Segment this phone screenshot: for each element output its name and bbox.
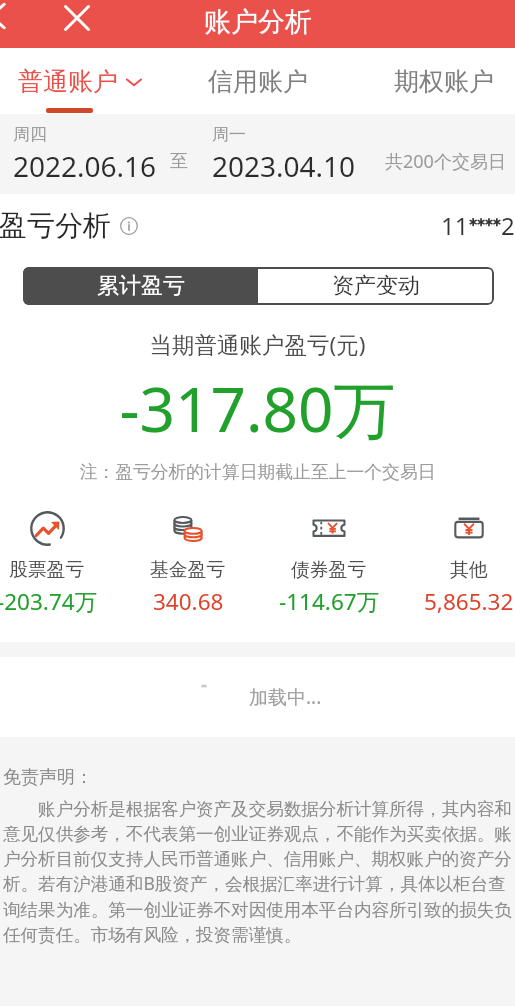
staticText: 2022.06.16 — [13, 147, 157, 185]
staticText: 当期普通账户盈亏(元) — [0, 329, 515, 360]
staticText: 其他 — [450, 558, 488, 582]
staticText: -203.74万 — [0, 586, 98, 617]
staticText: 累计盈亏 — [97, 272, 185, 300]
staticText: 资产变动 — [332, 272, 420, 300]
button[interactable]: 普通账户 — [4, 48, 156, 114]
staticText: 340.68 — [153, 586, 224, 617]
staticText: 周一 — [212, 124, 246, 145]
staticText: 11 — [441, 209, 469, 242]
button[interactable]: 周四 — [13, 124, 157, 185]
button[interactable]: Info — [120, 217, 138, 235]
staticText: 注：盈亏分析的计算日期截止至上一个交易日 — [0, 461, 515, 483]
staticText: 免责声明： — [3, 766, 93, 789]
staticText: 至 — [170, 150, 188, 173]
staticText: 账户分析 — [204, 5, 312, 39]
button[interactable]: 期权账户 — [368, 48, 515, 114]
staticText: 加载中... — [249, 684, 322, 710]
staticText: 2023.04.10 — [212, 147, 356, 185]
staticText: 基金盈亏 — [150, 558, 226, 582]
button[interactable]: 债券盈亏 — [259, 505, 399, 623]
staticText: 信用账户 — [208, 66, 308, 97]
button[interactable]: 累计盈亏 — [23, 267, 258, 305]
button[interactable]: 周一 — [212, 124, 356, 185]
button[interactable]: Close — [55, 0, 99, 40]
button[interactable]: 其他 — [399, 505, 515, 623]
staticText: 盈亏分析 — [0, 208, 111, 243]
staticText: 股票盈亏 — [9, 558, 85, 582]
staticText: 5,865.32 — [424, 586, 514, 617]
staticText: 普通账户 — [18, 66, 118, 97]
button[interactable]: 信用账户 — [182, 48, 334, 114]
staticText: 债券盈亏 — [291, 558, 367, 582]
staticText: 期权账户 — [394, 66, 494, 97]
button[interactable]: 股票盈亏 — [0, 505, 117, 623]
button[interactable]: 资产变动 — [258, 267, 494, 305]
staticText: -114.67万 — [279, 586, 380, 617]
button[interactable]: 基金盈亏 — [118, 505, 258, 623]
staticText: 共200个交易日 — [385, 149, 506, 174]
staticText: 周四 — [13, 124, 47, 145]
staticText: 账户分析是根据客户资产及交易数据分析计算所得，其内容和 意见仅供参考，不代表第一… — [3, 796, 512, 946]
staticText: 20 — [501, 209, 515, 242]
staticText: -317.80万 — [0, 366, 515, 451]
button[interactable]: Back — [0, 0, 20, 38]
